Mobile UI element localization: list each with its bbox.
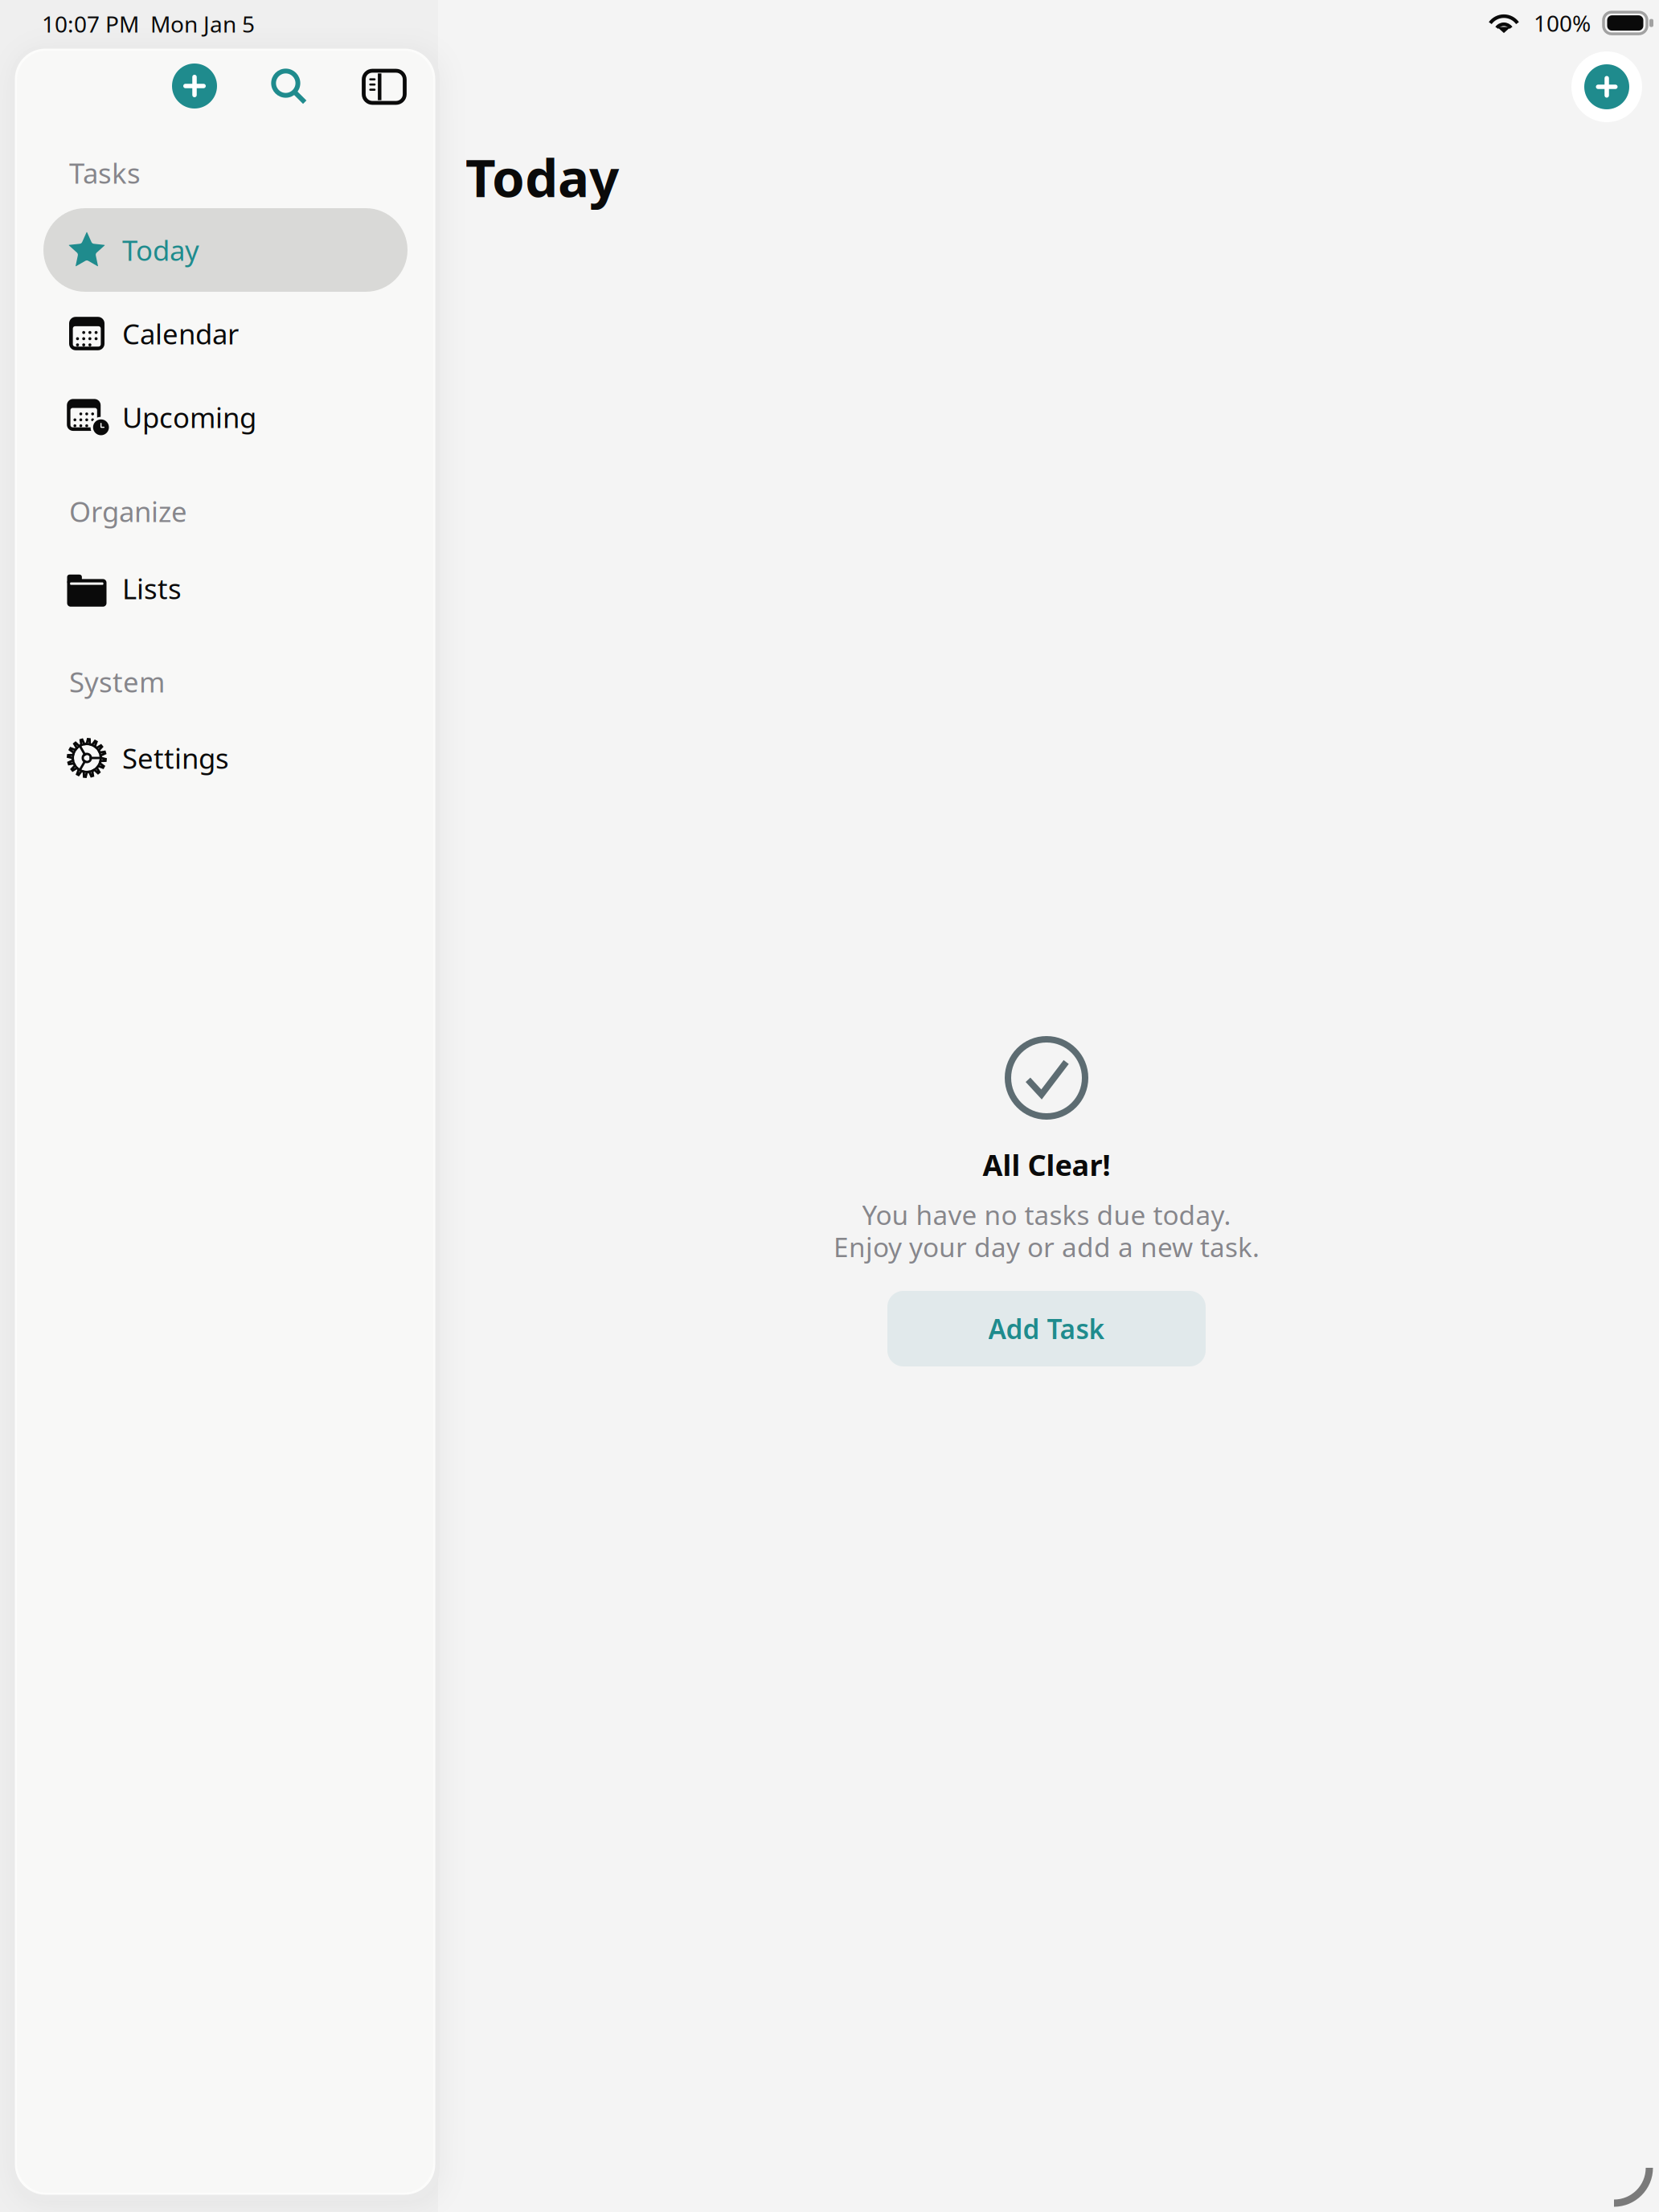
staticText: 10:07 PM [42, 9, 139, 39]
staticText: Add Task [988, 1311, 1105, 1346]
button[interactable]: Toggle sidebar [351, 54, 417, 120]
staticText: Today [465, 142, 619, 212]
staticText: Upcoming [122, 399, 256, 436]
button[interactable]: New task [162, 53, 227, 119]
staticText: System [69, 663, 165, 700]
staticText: Today [122, 231, 199, 268]
staticText: All Clear! [983, 1145, 1110, 1184]
staticText: Tasks [69, 154, 141, 191]
staticText: Settings [122, 739, 229, 776]
button[interactable]: Settings [43, 716, 408, 800]
button[interactable]: Add Task [887, 1291, 1206, 1366]
button[interactable]: Calendar [43, 292, 408, 375]
staticText: Calendar [122, 315, 239, 352]
staticText: Lists [122, 570, 182, 607]
button[interactable]: Lists [43, 547, 408, 630]
button[interactable]: Add task [1571, 51, 1642, 122]
staticText: Organize [69, 493, 187, 530]
staticText: Enjoy your day or add a new task. [834, 1229, 1260, 1265]
staticText: You have no tasks due today. [862, 1197, 1231, 1232]
button[interactable]: Search [257, 55, 323, 121]
staticText: 100% [1534, 8, 1591, 38]
button[interactable]: Upcoming [43, 375, 408, 459]
staticText: Mon Jan 5 [139, 9, 255, 39]
button[interactable]: Today [43, 208, 408, 292]
